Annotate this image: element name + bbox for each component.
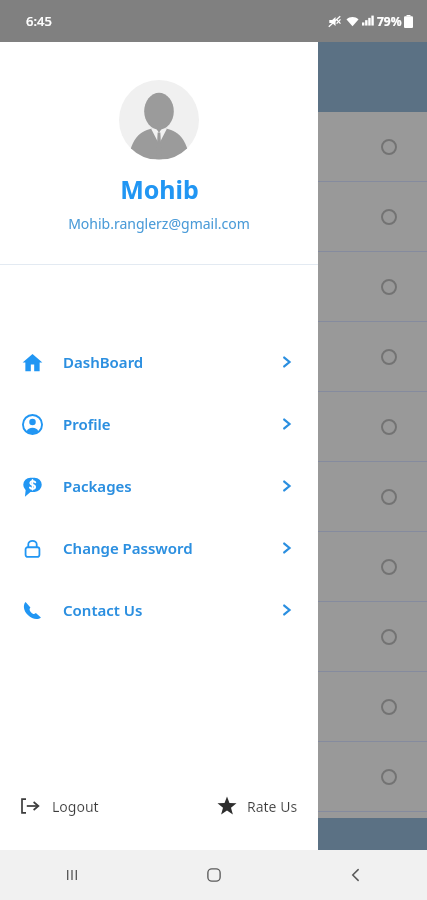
staticText: Mohib bbox=[120, 172, 199, 206]
button[interactable]: Contact Us bbox=[0, 579, 318, 641]
staticText: Logout bbox=[52, 797, 99, 816]
staticText: Packages bbox=[63, 476, 132, 496]
button[interactable]: Home bbox=[143, 850, 285, 900]
staticText: Mohib.ranglerz@gmail.com bbox=[68, 214, 250, 233]
button[interactable]: DashBoard bbox=[0, 331, 318, 393]
button[interactable]: Change Password bbox=[0, 517, 318, 579]
staticText: Profile bbox=[63, 414, 111, 434]
button[interactable]: Logout bbox=[0, 796, 107, 816]
staticText: 79% bbox=[377, 13, 402, 29]
button[interactable]: Profile bbox=[0, 393, 318, 455]
staticText: 6:45 bbox=[26, 12, 52, 30]
button[interactable]: Packages bbox=[0, 455, 318, 517]
button[interactable]: Rate Us bbox=[209, 796, 318, 816]
button[interactable]: Recent apps bbox=[0, 850, 143, 900]
button[interactable]: Back bbox=[285, 850, 427, 900]
staticText: Contact Us bbox=[63, 600, 143, 620]
staticText: Change Password bbox=[63, 538, 193, 558]
staticText: Rate Us bbox=[247, 797, 298, 816]
staticText: DashBoard bbox=[63, 352, 144, 372]
